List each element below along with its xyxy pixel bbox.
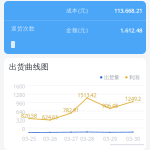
- staticText: 0: [22, 125, 25, 133]
- staticText: 03-27: [64, 135, 78, 142]
- staticText: 113,668.21: [114, 7, 142, 14]
- staticText: 820.58: [21, 112, 37, 119]
- staticText: 03-30: [126, 135, 140, 142]
- staticText: 906.48: [102, 102, 118, 109]
- staticText: 1600: [13, 83, 25, 90]
- staticText: 1,612.48: [120, 26, 142, 34]
- staticText: 03-25: [22, 135, 36, 142]
- staticText: 出货量: [104, 74, 119, 81]
- staticText: 金额(元): [66, 26, 88, 34]
- staticText: 1249.2: [125, 95, 141, 102]
- staticText: 1280: [13, 91, 25, 99]
- staticText: 成本(元): [66, 7, 88, 14]
- staticText: 1513.42: [77, 91, 96, 99]
- staticText: 03-28: [80, 135, 94, 142]
- staticText: 640: [16, 108, 25, 116]
- staticText: 960: [16, 100, 25, 107]
- staticText: 782.91: [63, 106, 79, 114]
- staticText: 利润: [129, 74, 139, 81]
- staticText: 03-29: [103, 135, 117, 142]
- staticText: 320: [16, 117, 25, 124]
- staticText: 出货曲线图: [9, 62, 49, 72]
- staticText: 624.63: [42, 113, 58, 121]
- staticText: 03-26: [43, 135, 57, 142]
- staticText: 退货次数: [11, 25, 35, 32]
